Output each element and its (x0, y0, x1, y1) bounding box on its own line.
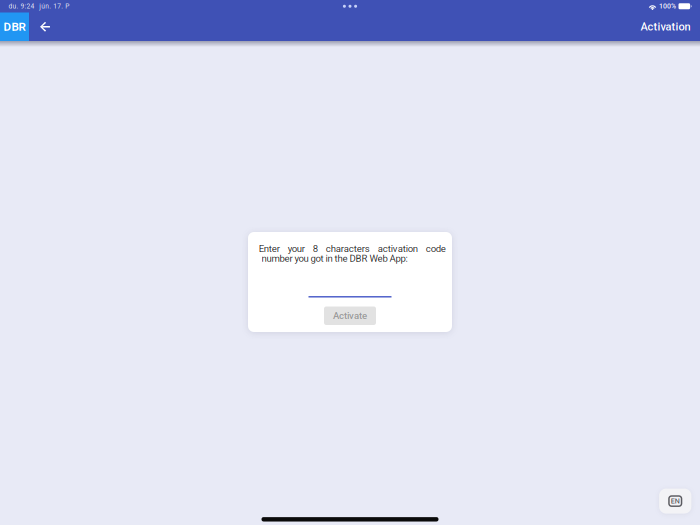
button[interactable]: Activation code (308, 284, 391, 297)
staticText: 8 (313, 243, 318, 254)
button[interactable]: Back (29, 12, 61, 41)
staticText: jún. 17. P (39, 2, 69, 10)
staticText: DBR (3, 20, 25, 34)
staticText: code (426, 243, 446, 254)
staticText: number you got in the DBR Web App: (261, 253, 407, 264)
staticText: your (288, 243, 305, 254)
staticText: activation (378, 243, 418, 254)
staticText: 100% (659, 2, 676, 10)
staticText: Activate (333, 310, 367, 321)
staticText: du. 9:24 (8, 2, 34, 10)
button[interactable]: Activate (324, 306, 376, 325)
staticText: EN (671, 497, 680, 505)
staticText: characters (326, 243, 370, 254)
staticText: Activation (640, 20, 690, 33)
staticText: Enter (259, 243, 280, 254)
button[interactable]: Keyboard language (659, 489, 691, 514)
